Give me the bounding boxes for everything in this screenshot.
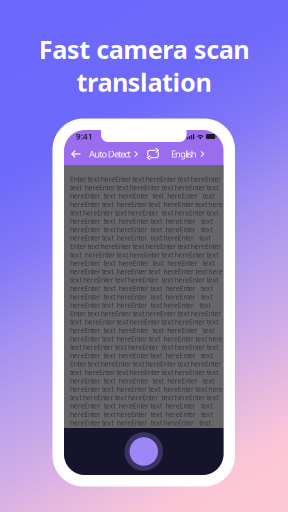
staticText: English xyxy=(171,148,197,160)
staticText: hereEnter text hereEnter text hereEnter … xyxy=(70,334,223,343)
staticText: Enter text hereEnter text hereEnter text… xyxy=(70,360,221,368)
staticText: Enter text hereEnter text hereEnter text… xyxy=(70,175,221,184)
staticText: hereEnter text hereEnter text hereEnter … xyxy=(70,192,214,200)
staticText: hereEnter text hereEnter text hereEnter … xyxy=(70,284,212,293)
staticText: translation xyxy=(76,65,211,99)
staticText: Enter text hereEnter text hereEnter text… xyxy=(70,242,221,251)
staticText: text hereEnter text hereEnter text hereE… xyxy=(70,183,218,192)
staticText: text hereEnter text hereEnter text hereE… xyxy=(70,318,218,326)
staticText: hereEnter text hereEnter text hereEnter … xyxy=(70,267,223,276)
staticText: Enter text hereEnter text hereEnter text… xyxy=(70,309,221,318)
staticText: text hereEnter text hereEnter text hereE… xyxy=(70,343,218,352)
staticText: hereEnter text hereEnter text hereEnter … xyxy=(70,301,211,310)
staticText: text hereEnter text hereEnter text hereE… xyxy=(70,276,218,284)
staticText: hereEnter text hereEnter text hereEnter … xyxy=(70,234,211,242)
staticText: hereEnter text hereEnter text hereEnter … xyxy=(70,418,211,427)
staticText: hereEnter text hereEnter text hereEnter … xyxy=(70,292,212,301)
button[interactable]: Swap languages xyxy=(146,143,160,165)
staticText: hereEnter text hereEnter text hereEnter … xyxy=(70,410,212,419)
staticText: text hereEnter text hereEnter text hereE… xyxy=(70,208,218,217)
button[interactable]: English xyxy=(171,143,204,165)
staticText: hereEnter text hereEnter text hereEnter … xyxy=(70,217,212,226)
staticText: text hereEnter text hereEnter text hereE… xyxy=(70,393,218,402)
staticText: hereEnter text hereEnter text hereEnter … xyxy=(70,351,212,360)
staticText: hereEnter text hereEnter text hereEnter … xyxy=(70,259,214,268)
staticText: hereEnter text hereEnter text hereEnter … xyxy=(70,402,212,410)
button[interactable]: Back xyxy=(68,143,84,165)
staticText: hereEnter text hereEnter text hereEnter … xyxy=(70,376,214,385)
staticText: Fast camera scan xyxy=(39,32,249,66)
staticText: 9:41 xyxy=(76,131,93,142)
staticText: Auto Detect xyxy=(89,148,130,160)
staticText: hereEnter text hereEnter text hereEnter … xyxy=(70,200,223,209)
staticText: hereEnter text hereEnter text hereEnter … xyxy=(70,385,223,394)
staticText: text hereEnter text hereEnter text hereE… xyxy=(70,368,218,377)
button[interactable]: Capture xyxy=(124,432,163,471)
staticText: hereEnter text hereEnter text hereEnter … xyxy=(70,326,214,335)
staticText: hereEnter text hereEnter text hereEnter … xyxy=(70,225,212,234)
button[interactable]: Auto Detect xyxy=(89,143,138,165)
staticText: text hereEnter text hereEnter text hereE… xyxy=(70,250,218,259)
